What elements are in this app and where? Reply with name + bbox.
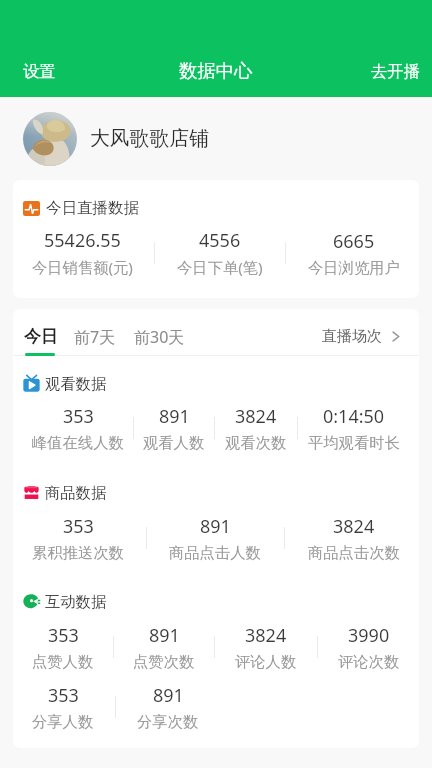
staticText: 去开播 (371, 61, 420, 81)
button[interactable]: 大风歌歌店铺 (0, 97, 432, 180)
button[interactable]: 直播场次 (320, 319, 404, 354)
staticText: 891 (149, 623, 180, 648)
button[interactable]: 今日 (19, 318, 63, 355)
staticText: 3824 (245, 623, 287, 648)
staticText: 直播场次 (322, 327, 382, 346)
staticText: 评论人数 (235, 652, 297, 671)
button[interactable]: 前7天 (69, 318, 121, 356)
staticText: 3824 (235, 404, 277, 429)
staticText: 今日 (24, 326, 58, 347)
staticText: 前7天 (74, 326, 116, 348)
staticText: 前30天 (134, 326, 185, 348)
staticText: 今日直播数据 (46, 198, 139, 218)
button[interactable]: 前30天 (129, 318, 190, 356)
staticText: 今日浏览用户 (308, 258, 400, 277)
staticText: 891 (159, 404, 190, 429)
staticText: 891 (153, 683, 184, 708)
staticText: 点赞人数 (32, 652, 94, 671)
button[interactable]: 去开播 (357, 52, 432, 90)
staticText: 分享人数 (32, 712, 94, 731)
staticText: 3824 (333, 514, 375, 539)
staticText: 峰值在线人数 (32, 433, 124, 452)
staticText: 观看次数 (225, 433, 287, 452)
staticText: 353 (63, 514, 94, 539)
staticText: 设置 (23, 61, 56, 81)
staticText: 商品点击次数 (308, 543, 400, 562)
staticText: 评论次数 (338, 652, 400, 671)
staticText: 点赞次数 (133, 652, 195, 671)
staticText: 数据中心 (179, 59, 253, 82)
staticText: 平均观看时长 (308, 433, 400, 452)
staticText: 大风歌歌店铺 (90, 126, 209, 151)
staticText: 353 (48, 683, 79, 708)
staticText: 今日销售额(元) (32, 257, 133, 278)
staticText: 353 (48, 623, 79, 648)
staticText: 今日下单(笔) (177, 257, 263, 278)
staticText: 3990 (348, 623, 390, 648)
staticText: 互动数据 (45, 592, 107, 610)
staticText: 分享次数 (137, 712, 199, 731)
button[interactable]: 设置 (9, 52, 70, 90)
staticText: 累积推送次数 (32, 543, 124, 562)
staticText: 55426.55 (44, 228, 121, 253)
staticText: 6665 (333, 229, 375, 254)
staticText: 0:14:50 (323, 404, 385, 429)
staticText: 891 (200, 514, 231, 539)
staticText: 商品点击人数 (169, 543, 261, 562)
staticText: 商品数据 (45, 483, 107, 501)
staticText: 353 (63, 404, 94, 429)
staticText: 观看数据 (45, 374, 107, 392)
staticText: 观看人数 (143, 433, 205, 452)
staticText: 4556 (199, 228, 241, 253)
